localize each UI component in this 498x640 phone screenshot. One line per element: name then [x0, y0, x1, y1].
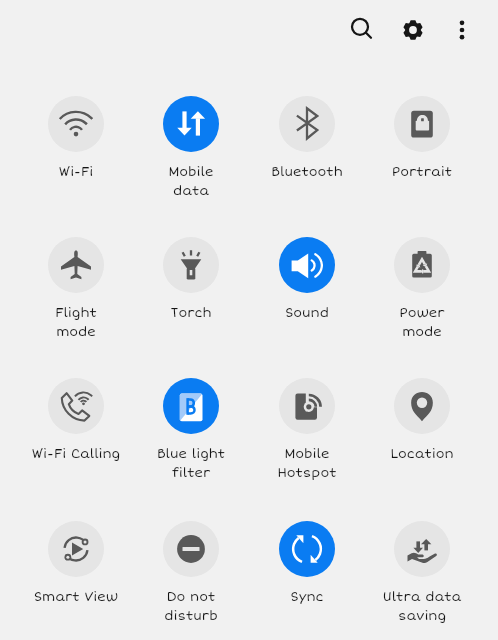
- staticText: Ultra data saving: [365, 589, 479, 624]
- button[interactable]: More options: [439, 7, 485, 53]
- staticText: Wi-Fi Calling: [19, 446, 133, 462]
- button[interactable]: Portrait: [365, 96, 479, 180]
- staticText: Sync: [250, 589, 364, 605]
- staticText: Sound: [250, 305, 364, 321]
- staticText: Power mode: [365, 305, 479, 340]
- button[interactable]: Settings: [390, 7, 436, 53]
- button[interactable]: Location: [365, 378, 479, 462]
- button[interactable]: Bluetooth: [250, 96, 364, 180]
- button[interactable]: Wi-Fi: [19, 96, 133, 180]
- staticText: Mobile Hotspot: [250, 446, 364, 481]
- staticText: Smart View: [19, 589, 133, 605]
- button[interactable]: Blue light filter: [134, 378, 248, 481]
- staticText: Wi-Fi: [19, 164, 133, 180]
- button[interactable]: Power mode: [365, 237, 479, 340]
- button[interactable]: Search: [338, 5, 384, 51]
- staticText: Torch: [134, 305, 248, 321]
- button[interactable]: Ultra data saving: [365, 521, 479, 624]
- button[interactable]: Do not disturb: [134, 521, 248, 624]
- staticText: Mobile data: [134, 164, 248, 199]
- button[interactable]: Mobile Hotspot: [250, 378, 364, 481]
- staticText: Location: [365, 446, 479, 462]
- button[interactable]: Sync: [250, 521, 364, 605]
- staticText: Bluetooth: [250, 164, 364, 180]
- button[interactable]: Smart View: [19, 521, 133, 605]
- staticText: Portrait: [365, 164, 479, 180]
- staticText: Do not disturb: [134, 589, 248, 624]
- button[interactable]: Torch: [134, 237, 248, 321]
- staticText: Flight mode: [19, 305, 133, 340]
- button[interactable]: Mobile data: [134, 96, 248, 199]
- staticText: Blue light filter: [134, 446, 248, 481]
- button[interactable]: Wi-Fi Calling: [19, 378, 133, 462]
- button[interactable]: Flight mode: [19, 237, 133, 340]
- button[interactable]: Sound: [250, 237, 364, 321]
